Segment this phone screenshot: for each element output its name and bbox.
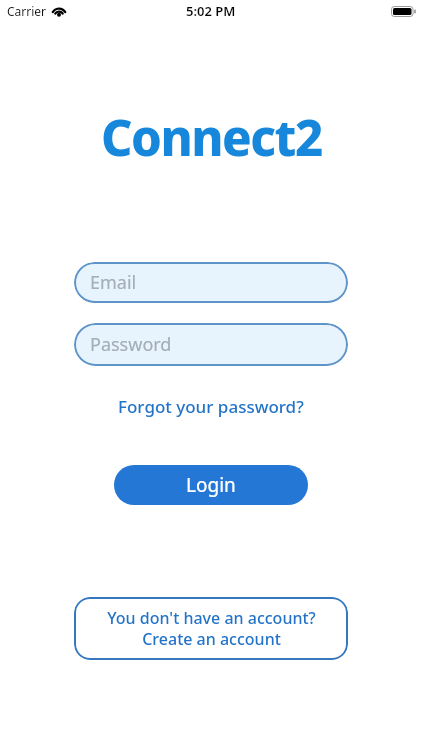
button[interactable]: Email bbox=[74, 262, 348, 303]
staticText: You don't have an account? Create an acc… bbox=[107, 607, 316, 650]
staticText: Connect2 bbox=[101, 104, 322, 171]
button[interactable]: Password bbox=[74, 323, 348, 366]
button[interactable]: Forgot your password? bbox=[118, 395, 304, 418]
staticText: Forgot your password? bbox=[118, 395, 304, 418]
button[interactable]: You don't have an account? Create an acc… bbox=[74, 597, 348, 660]
button[interactable]: Login bbox=[114, 465, 308, 505]
staticText: 5:02 PM bbox=[186, 2, 236, 20]
staticText: Email bbox=[90, 270, 137, 295]
staticText: Carrier bbox=[7, 3, 47, 19]
staticText: Login bbox=[186, 472, 236, 498]
staticText: Password bbox=[90, 332, 172, 357]
